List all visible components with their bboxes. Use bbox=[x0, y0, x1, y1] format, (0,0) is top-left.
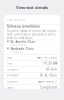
staticText: Date bbox=[7, 56, 13, 59]
staticText: Exam room 3 bbox=[38, 80, 57, 83]
staticText: Northside Clinic bbox=[10, 47, 33, 51]
staticText: Location bbox=[7, 80, 18, 83]
staticText: Provider bbox=[7, 74, 19, 77]
staticText: Primary care physician bbox=[10, 44, 27, 46]
staticText: 412 Maple Avenue bbox=[10, 51, 23, 53]
staticText: Dr. A. Chen bbox=[40, 74, 57, 77]
staticText: VISIT RECORD bbox=[7, 18, 25, 21]
staticText: Routine review of recent lab results wit… bbox=[7, 29, 56, 40]
staticText: 10:30 AM bbox=[43, 62, 57, 65]
staticText: View visit details bbox=[16, 5, 48, 10]
staticText: Duration bbox=[7, 68, 19, 71]
staticText: Status bbox=[7, 86, 14, 89]
staticText: Follow-up consultation bbox=[7, 25, 40, 28]
staticText: Dr. Amelia Chen bbox=[10, 40, 35, 44]
staticText: 45 min bbox=[46, 68, 57, 71]
staticText: Completed bbox=[40, 86, 57, 89]
staticText: Time bbox=[7, 62, 13, 65]
staticText: Mar 14, 2024 bbox=[37, 56, 57, 59]
